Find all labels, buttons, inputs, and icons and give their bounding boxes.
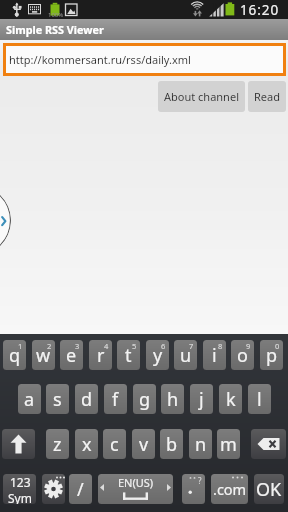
staticText: 7 <box>189 341 194 351</box>
staticText: 2 <box>47 341 52 351</box>
staticText: 3 <box>75 341 80 351</box>
button[interactable]: i <box>203 340 226 370</box>
staticText: 16:20 <box>240 1 280 19</box>
staticText: q <box>9 343 21 368</box>
button[interactable]: w <box>32 340 55 370</box>
staticText: t <box>125 343 132 368</box>
button[interactable]: m <box>217 429 240 459</box>
staticText: g <box>139 387 151 412</box>
staticText: Simple RSS Viewer <box>6 22 104 37</box>
button[interactable]: About channel <box>158 81 245 112</box>
staticText: u <box>180 343 192 368</box>
staticText: 5 <box>132 341 137 351</box>
button[interactable] <box>42 474 65 504</box>
staticText: z <box>53 432 62 457</box>
staticText: o <box>237 343 248 368</box>
button[interactable]: t <box>117 340 140 370</box>
staticText: n <box>195 432 207 457</box>
button[interactable]: z <box>46 429 69 459</box>
button[interactable]: x <box>75 429 98 459</box>
staticText: y <box>153 343 163 368</box>
staticText: d <box>81 387 93 412</box>
staticText: About channel <box>164 89 239 104</box>
button[interactable]: EN(US) <box>98 474 173 504</box>
staticText: r <box>97 343 105 368</box>
staticText: Sym <box>8 490 32 504</box>
button[interactable]: .com <box>211 474 248 504</box>
staticText: 4 <box>104 341 109 351</box>
staticText: e <box>66 343 77 368</box>
staticText: s <box>53 387 62 412</box>
staticText: .com <box>213 479 247 499</box>
button[interactable]: r <box>89 340 112 370</box>
button[interactable]: g <box>133 384 156 414</box>
staticText: Read <box>254 89 280 104</box>
button[interactable]: e <box>60 340 83 370</box>
staticText: EN(US) <box>118 475 154 490</box>
button[interactable]: f <box>104 384 127 414</box>
button[interactable]: l <box>248 384 271 414</box>
button[interactable]: Read <box>248 81 286 112</box>
staticText: x <box>82 432 92 457</box>
staticText: 100% <box>48 11 64 19</box>
staticText: 1 <box>18 341 23 351</box>
button[interactable]: http://kommersant.ru/rss/daily.xml <box>3 43 286 76</box>
button[interactable]: s <box>46 384 69 414</box>
staticText: OK <box>256 477 282 502</box>
staticText: l <box>257 387 262 412</box>
button[interactable]: o <box>231 340 254 370</box>
staticText: w <box>36 343 51 368</box>
staticText: i <box>212 343 217 368</box>
button[interactable]: k <box>219 384 242 414</box>
button[interactable]: Open panel <box>0 185 11 256</box>
button[interactable]: v <box>132 429 155 459</box>
staticText: 6 <box>161 341 166 351</box>
staticText: ? <box>198 475 202 486</box>
button[interactable]: a <box>18 384 41 414</box>
staticText: h <box>167 387 179 412</box>
button[interactable]: p <box>260 340 283 370</box>
button[interactable]: y <box>146 340 169 370</box>
button[interactable]: n <box>189 429 212 459</box>
staticText: k <box>226 387 236 412</box>
staticText: f <box>112 387 119 412</box>
button[interactable]: u <box>174 340 197 370</box>
staticText: / <box>77 477 84 502</box>
button[interactable]: / <box>69 474 92 504</box>
button[interactable] <box>251 429 286 459</box>
staticText: 0 <box>275 341 280 351</box>
staticText: 123 <box>10 474 31 490</box>
button[interactable]: j <box>190 384 213 414</box>
button[interactable]: OK <box>254 474 284 504</box>
button[interactable]: 123 <box>3 474 36 504</box>
button[interactable]: d <box>75 384 98 414</box>
button[interactable]: ? <box>182 474 205 504</box>
button[interactable]: c <box>103 429 126 459</box>
button[interactable]: h <box>161 384 184 414</box>
staticText: 9 <box>246 341 251 351</box>
staticText: b <box>166 432 178 457</box>
button[interactable]: q <box>3 340 26 370</box>
staticText: v <box>139 432 149 457</box>
button[interactable] <box>2 429 35 459</box>
staticText: 8 <box>218 341 223 351</box>
staticText: a <box>24 387 35 412</box>
staticText: m <box>220 432 237 457</box>
staticText: c <box>110 432 119 457</box>
staticText: p <box>266 343 278 368</box>
staticText: j <box>199 387 204 412</box>
staticText: http://kommersant.ru/rss/daily.xml <box>9 52 191 67</box>
button[interactable]: b <box>160 429 183 459</box>
